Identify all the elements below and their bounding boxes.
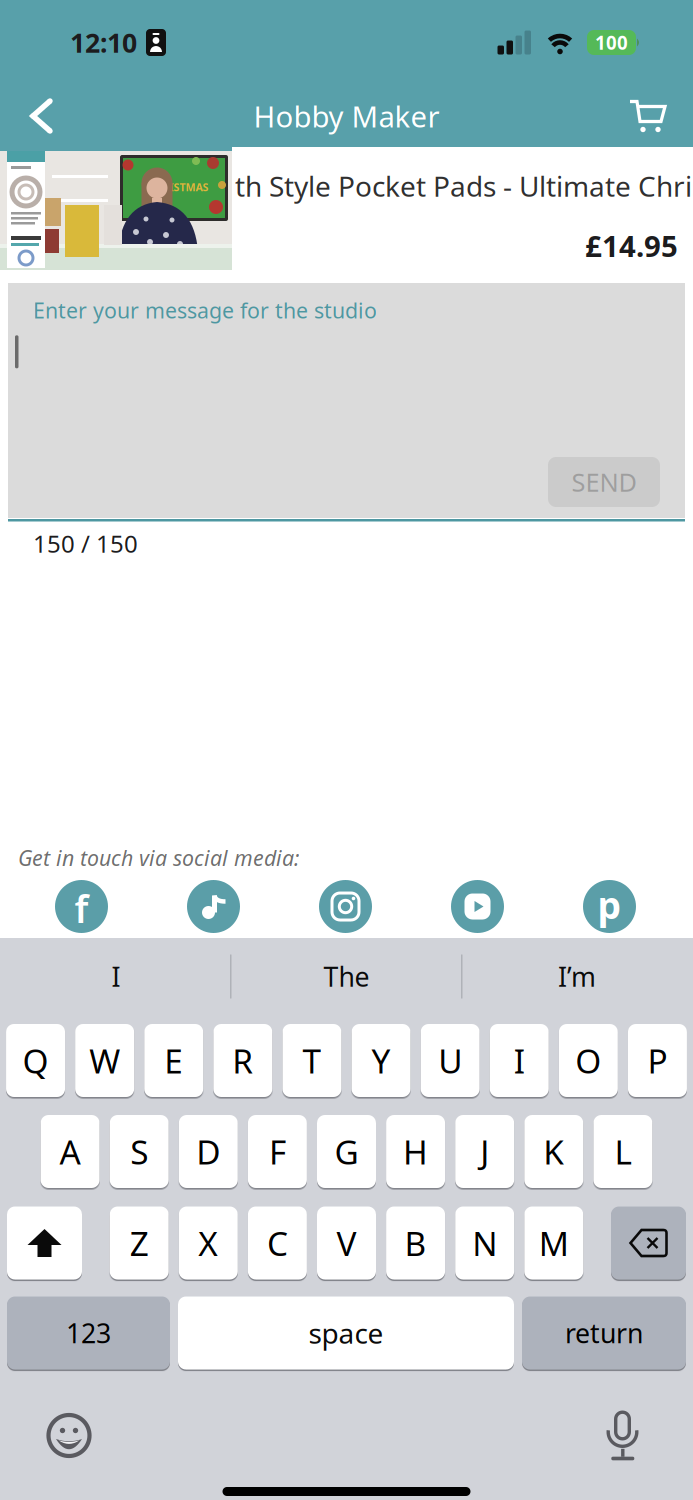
staticText: S: [130, 1129, 148, 1174]
staticText: P: [647, 1038, 667, 1083]
button[interactable]: Y: [352, 1024, 411, 1097]
staticText: G: [334, 1129, 358, 1174]
staticText: I: [111, 959, 120, 994]
staticText: A: [60, 1129, 81, 1174]
button[interactable]: G: [317, 1115, 376, 1188]
button[interactable]: Z: [110, 1206, 169, 1279]
button[interactable]: H: [386, 1115, 445, 1188]
button[interactable]: W: [75, 1024, 134, 1097]
staticText: 100: [595, 30, 628, 55]
staticText: th Style Pocket Pads - Ultimate Chris: [235, 167, 693, 205]
staticText: space: [308, 1314, 383, 1352]
button[interactable]: K: [524, 1115, 583, 1188]
button[interactable]: A: [41, 1115, 100, 1188]
staticText: The: [323, 959, 369, 994]
staticText: Hobby Maker: [253, 96, 439, 135]
button[interactable]: Cart: [629, 98, 693, 133]
staticText: p: [597, 880, 621, 929]
button[interactable]: SEND: [548, 457, 660, 507]
button[interactable]: X: [179, 1206, 238, 1279]
button[interactable]: R: [213, 1024, 272, 1097]
staticText: O: [575, 1038, 601, 1083]
button[interactable]: N: [455, 1206, 514, 1279]
staticText: J: [480, 1129, 489, 1174]
staticText: C: [267, 1221, 288, 1265]
button[interactable]: F: [248, 1115, 307, 1188]
staticText: U: [438, 1038, 462, 1083]
staticText: N: [472, 1221, 497, 1265]
staticText: B: [405, 1221, 427, 1265]
staticText: D: [196, 1129, 220, 1174]
staticText: I’m: [558, 959, 596, 994]
staticText: W: [89, 1038, 120, 1083]
staticText: M: [539, 1221, 569, 1265]
button[interactable]: C: [248, 1206, 307, 1279]
staticText: Enter your message for the studio: [33, 296, 377, 324]
staticText: Get in touch via social media:: [18, 844, 299, 872]
staticText: Z: [130, 1221, 149, 1265]
button[interactable]: TikTok: [187, 880, 240, 933]
staticText: Y: [372, 1038, 391, 1083]
button[interactable]: T: [282, 1024, 341, 1097]
button[interactable]: return: [522, 1296, 686, 1369]
staticText: X: [198, 1221, 218, 1265]
button[interactable]: E: [144, 1024, 203, 1097]
staticText: V: [336, 1221, 356, 1265]
button[interactable]: Back: [0, 98, 54, 134]
button[interactable]: The: [231, 938, 462, 1015]
button[interactable]: YouTube: [451, 880, 504, 933]
button[interactable]: Instagram: [319, 880, 372, 933]
button[interactable]: V: [317, 1206, 376, 1279]
button[interactable]: J: [455, 1115, 514, 1188]
button[interactable]: Facebook: [55, 880, 108, 933]
button[interactable]: P: [628, 1024, 687, 1097]
button[interactable]: D: [179, 1115, 238, 1188]
staticText: T: [302, 1038, 321, 1083]
button[interactable]: Dictate: [607, 1410, 641, 1460]
button[interactable]: Delete: [611, 1206, 686, 1279]
button[interactable]: Pinterest: [583, 880, 636, 933]
button[interactable]: U: [421, 1024, 480, 1097]
staticText: £14.95: [585, 226, 678, 265]
button[interactable]: L: [593, 1115, 652, 1188]
button[interactable]: 123: [7, 1296, 170, 1369]
staticText: return: [565, 1315, 643, 1351]
button[interactable]: I: [490, 1024, 549, 1097]
staticText: CHRISTMAS: [147, 180, 208, 194]
button[interactable]: Shift: [7, 1206, 82, 1279]
staticText: F: [269, 1129, 286, 1174]
button[interactable]: Emoji: [46, 1412, 92, 1458]
staticText: 150 / 150: [33, 527, 138, 559]
staticText: H: [403, 1129, 428, 1174]
staticText: Q: [23, 1038, 49, 1083]
staticText: K: [543, 1129, 564, 1174]
button[interactable]: S: [110, 1115, 169, 1188]
staticText: I: [514, 1038, 525, 1083]
staticText: R: [232, 1038, 253, 1083]
button[interactable]: B: [386, 1206, 445, 1279]
staticText: L: [614, 1129, 631, 1174]
button[interactable]: Q: [6, 1024, 65, 1097]
button[interactable]: space: [178, 1296, 514, 1369]
button[interactable]: I’m: [462, 938, 692, 1015]
staticText: SEND: [571, 465, 636, 499]
button[interactable]: I: [1, 938, 231, 1015]
staticText: f: [74, 884, 88, 933]
staticText: 123: [66, 1315, 111, 1351]
button[interactable]: O: [559, 1024, 618, 1097]
staticText: 12:10: [70, 25, 137, 60]
button[interactable]: M: [524, 1206, 583, 1279]
staticText: E: [164, 1038, 183, 1083]
